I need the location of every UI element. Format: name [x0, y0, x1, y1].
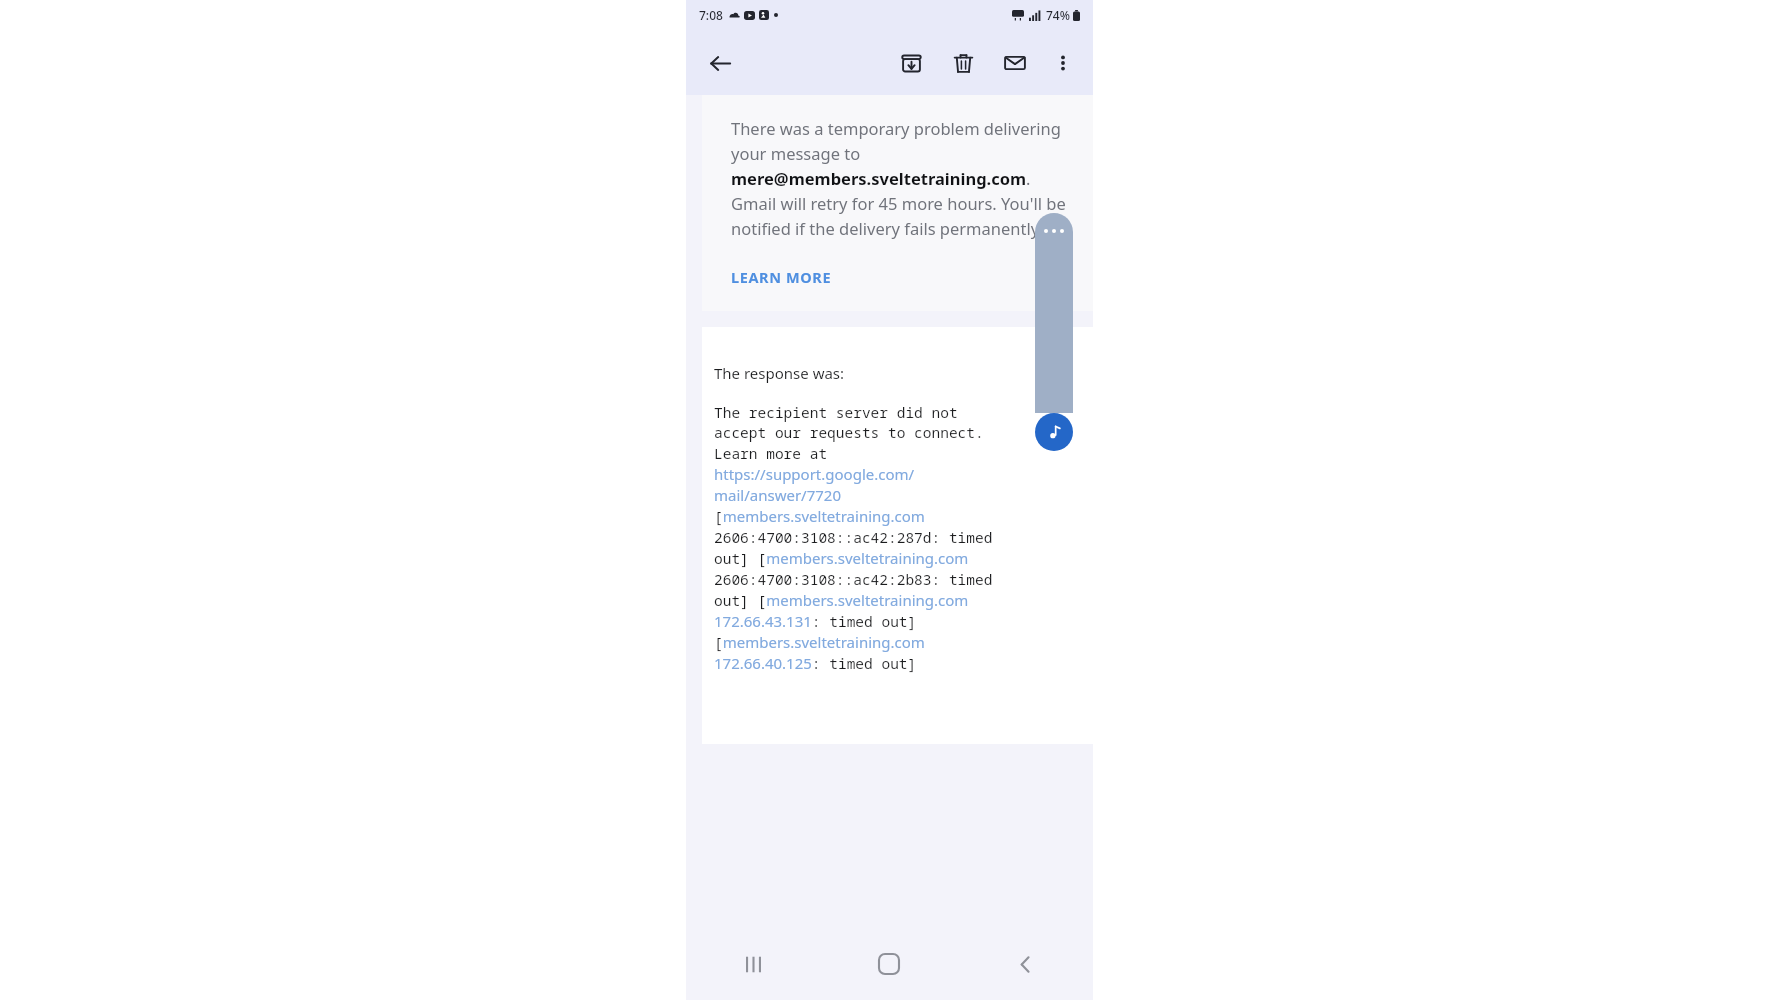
button[interactable]: LEARN MORE — [731, 267, 832, 287]
staticText: 7:08 — [699, 7, 723, 23]
staticText: The response was: — [714, 363, 845, 383]
button[interactable]: Recent apps — [686, 928, 821, 1000]
staticText: The recipient server did not accept our … — [714, 402, 993, 674]
button[interactable]: More options — [1041, 41, 1085, 85]
button[interactable]: There was a temporary problem delivering… — [702, 95, 1093, 311]
button[interactable]: Back — [698, 41, 742, 85]
button[interactable]: Back — [957, 928, 1093, 1000]
button[interactable]: Delete — [941, 41, 985, 85]
button[interactable]: Home — [821, 928, 957, 1000]
button[interactable]: Music — [1035, 413, 1073, 451]
button[interactable]: Edge panel handle — [1035, 213, 1073, 413]
staticText: There was a temporary problem delivering… — [731, 117, 1077, 240]
staticText: 74% — [1046, 7, 1070, 23]
staticText: LEARN MORE — [731, 267, 832, 287]
button[interactable]: Archive — [889, 41, 933, 85]
button[interactable]: Mark unread — [993, 41, 1037, 85]
